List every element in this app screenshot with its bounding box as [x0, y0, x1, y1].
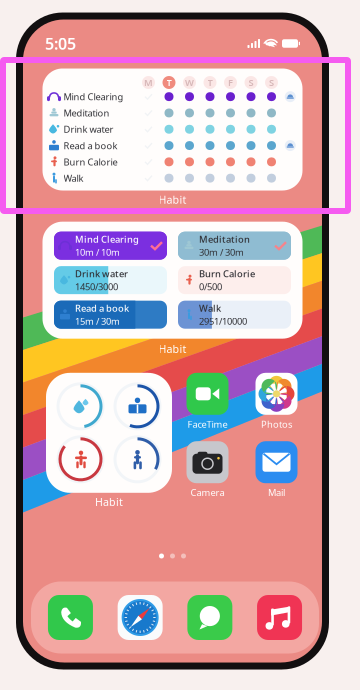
staticText: Read a book [75, 302, 129, 314]
staticText: 5:05 [45, 33, 76, 54]
staticText: Mail [268, 486, 285, 499]
button[interactable]: Music [257, 595, 302, 640]
staticText: 15m / 30m [75, 315, 120, 327]
staticText: 30m / 30m [199, 246, 244, 258]
staticText: M [144, 76, 153, 89]
staticText: 10m / 10m [75, 246, 120, 258]
staticText: Walk [199, 302, 221, 314]
staticText: S [269, 76, 274, 89]
staticText: Drink water [75, 267, 128, 280]
button[interactable]: Messages [187, 595, 232, 640]
button[interactable]: Camera [186, 441, 228, 499]
staticText: Walk [63, 172, 83, 184]
staticText: 0/500 [199, 280, 222, 293]
staticText: Read a book [63, 139, 117, 152]
staticText: 2951/10000 [199, 315, 247, 327]
staticText: Meditation [199, 233, 250, 245]
button[interactable]: M [42, 68, 302, 190]
staticText: T [166, 76, 171, 89]
staticText: F [228, 76, 233, 89]
button[interactable]: Phone [48, 595, 93, 640]
button[interactable]: Photos [255, 373, 297, 430]
staticText: Burn Calorie [63, 156, 117, 168]
staticText: S [248, 76, 253, 89]
staticText: Burn Calorie [199, 267, 255, 280]
staticText: Camera [190, 486, 224, 499]
button[interactable]: Safari [118, 595, 163, 640]
button[interactable]: FaceTime [186, 373, 228, 430]
staticText: FaceTime [187, 418, 227, 430]
staticText: Habit [95, 495, 123, 509]
staticText: Meditation [63, 107, 109, 119]
staticText: Habit [158, 192, 186, 207]
staticText: W [185, 76, 194, 89]
staticText: Drink water [63, 123, 113, 135]
staticText: Mind Clearing [75, 233, 139, 245]
button[interactable] [46, 373, 172, 493]
staticText: Photos [261, 418, 292, 430]
staticText: 1450/3000 [75, 280, 118, 293]
staticText: T [207, 76, 212, 89]
staticText: Mind Clearing [63, 90, 123, 103]
staticText: Habit [158, 342, 186, 356]
button[interactable]: Mail [255, 441, 297, 499]
button[interactable]: Mind Clearing [42, 222, 302, 339]
